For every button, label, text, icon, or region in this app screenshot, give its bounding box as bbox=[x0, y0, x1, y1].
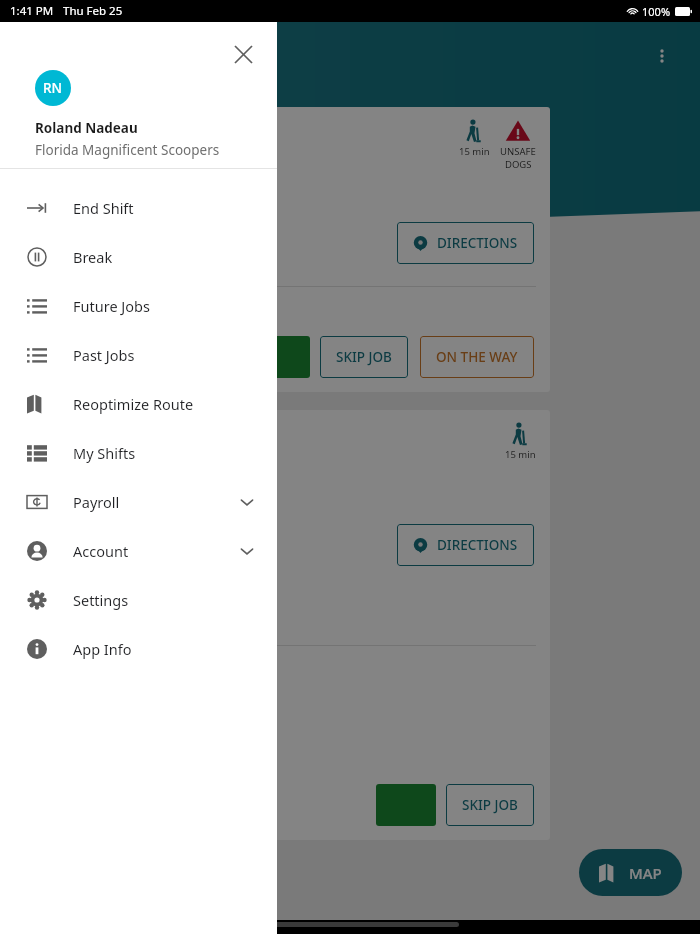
staticText: maintenance bbox=[40, 590, 117, 607]
staticText: OA bbox=[40, 487, 68, 514]
button[interactable]: End Shift bbox=[0, 183, 277, 232]
button[interactable]: Payroll bbox=[0, 477, 277, 526]
button[interactable]: SKIP JOB bbox=[446, 784, 534, 826]
button[interactable] bbox=[376, 784, 436, 826]
button[interactable]: 15 min bbox=[26, 410, 550, 840]
staticText: Future Jobs bbox=[73, 296, 150, 316]
button[interactable]: Reoptimize Route bbox=[0, 379, 277, 428]
staticText: Roland Nadeau bbox=[35, 119, 138, 137]
button[interactable]: 15 min bbox=[26, 107, 550, 392]
staticText: Florida Magnificent Scoopers bbox=[35, 141, 220, 159]
button[interactable] bbox=[250, 336, 310, 378]
button[interactable]: SKIP JOB bbox=[320, 336, 408, 378]
staticText: Payroll bbox=[73, 492, 120, 512]
staticText: e bbox=[40, 185, 52, 212]
button[interactable]: My Shifts bbox=[0, 428, 277, 477]
button[interactable]: Settings bbox=[0, 575, 277, 624]
staticText: App Info bbox=[73, 639, 132, 659]
staticText: SKIP JOB bbox=[336, 348, 392, 366]
button[interactable]: Break bbox=[0, 232, 277, 281]
staticText: UNSAFE bbox=[500, 145, 536, 158]
button[interactable]: Close drawer bbox=[223, 34, 263, 74]
button[interactable]: Future Jobs bbox=[0, 281, 277, 330]
button[interactable]: Account bbox=[0, 526, 277, 575]
staticText: SKIP JOB bbox=[462, 796, 518, 814]
staticText: MAP bbox=[629, 863, 662, 883]
staticText: ON THE WAY bbox=[436, 348, 518, 366]
staticText: DIRECTIONS bbox=[437, 536, 518, 554]
staticText: 100% bbox=[642, 4, 671, 19]
staticText: My Shifts bbox=[73, 443, 136, 463]
staticText: DOGS bbox=[505, 158, 532, 171]
button[interactable]: MAP bbox=[579, 849, 682, 896]
button[interactable]: App Info bbox=[0, 624, 277, 673]
staticText: Reoptimize Route bbox=[73, 394, 194, 414]
button[interactable]: DIRECTIONS bbox=[397, 222, 534, 264]
button[interactable]: DIRECTIONS bbox=[397, 524, 534, 566]
staticText: End Shift bbox=[73, 198, 134, 218]
button[interactable]: Past Jobs bbox=[0, 330, 277, 379]
staticText: Account bbox=[73, 541, 129, 561]
button[interactable]: More options bbox=[642, 36, 682, 76]
staticText: 1:41 PM bbox=[10, 3, 54, 19]
staticText: Break bbox=[73, 247, 113, 267]
staticText: 15 min bbox=[505, 448, 536, 461]
staticText: 15 min bbox=[459, 145, 490, 158]
staticText: Thu Feb 25 bbox=[63, 3, 123, 19]
staticText: Past Jobs bbox=[73, 345, 135, 365]
staticText: RN bbox=[43, 79, 63, 97]
staticText: DIRECTIONS bbox=[437, 234, 518, 252]
staticText: Settings bbox=[73, 590, 129, 610]
button[interactable]: ON THE WAY bbox=[420, 336, 534, 378]
